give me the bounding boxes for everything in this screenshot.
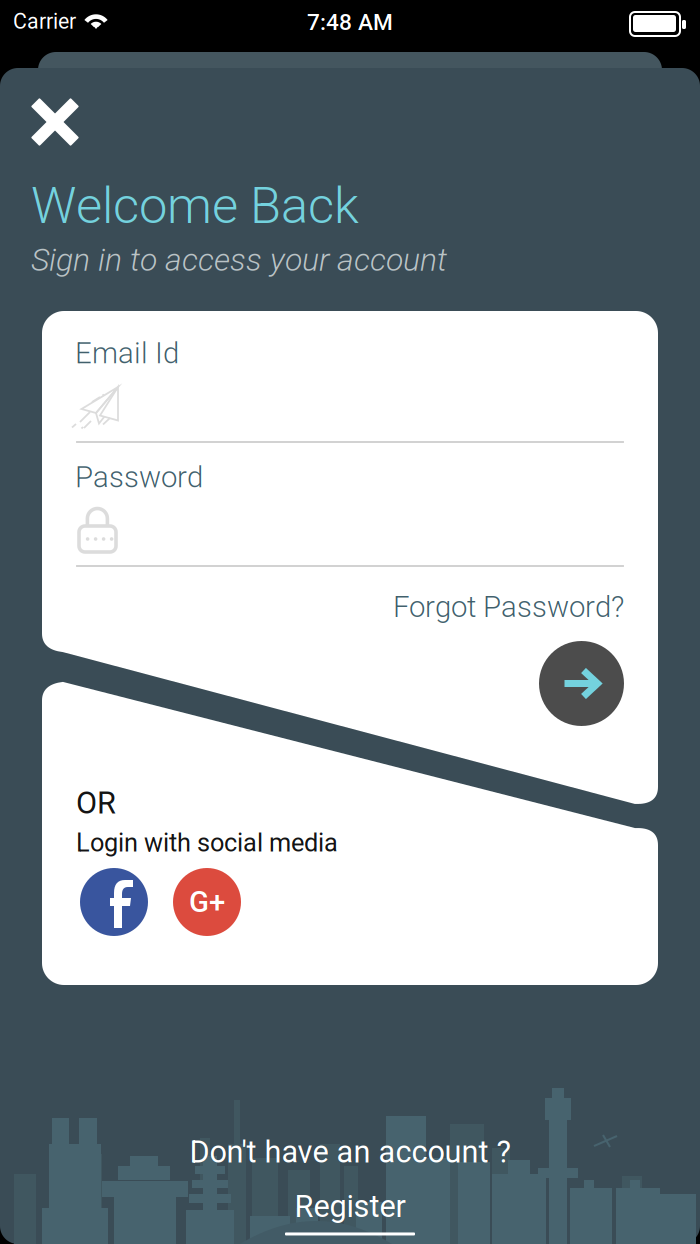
button[interactable]: Close [24, 91, 86, 153]
staticText: Don't have an account ? [189, 1134, 510, 1170]
staticText: Sign in to access your account [31, 241, 447, 278]
staticText: Login with social media [76, 828, 338, 858]
button[interactable]: Sign in with Google [173, 868, 241, 936]
button[interactable]: Sign in with Facebook [80, 868, 148, 936]
staticText: Password [75, 460, 203, 494]
staticText: Email Id [75, 336, 179, 370]
staticText: 7:48 AM [307, 9, 393, 36]
staticText: Carrier [13, 9, 76, 34]
button[interactable]: Register [250, 1184, 450, 1240]
button[interactable]: Forgot Password? [304, 585, 624, 629]
button[interactable]: Sign in [539, 641, 624, 726]
staticText: Forgot Password? [393, 590, 624, 624]
staticText: OR [76, 785, 116, 821]
staticText: G+ [189, 885, 225, 919]
staticText: Welcome Back [31, 176, 359, 235]
staticText: Register [294, 1188, 405, 1224]
